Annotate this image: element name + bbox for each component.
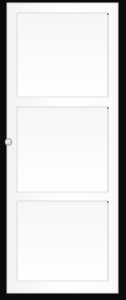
button[interactable]: White shaker door — [0, 0, 126, 300]
